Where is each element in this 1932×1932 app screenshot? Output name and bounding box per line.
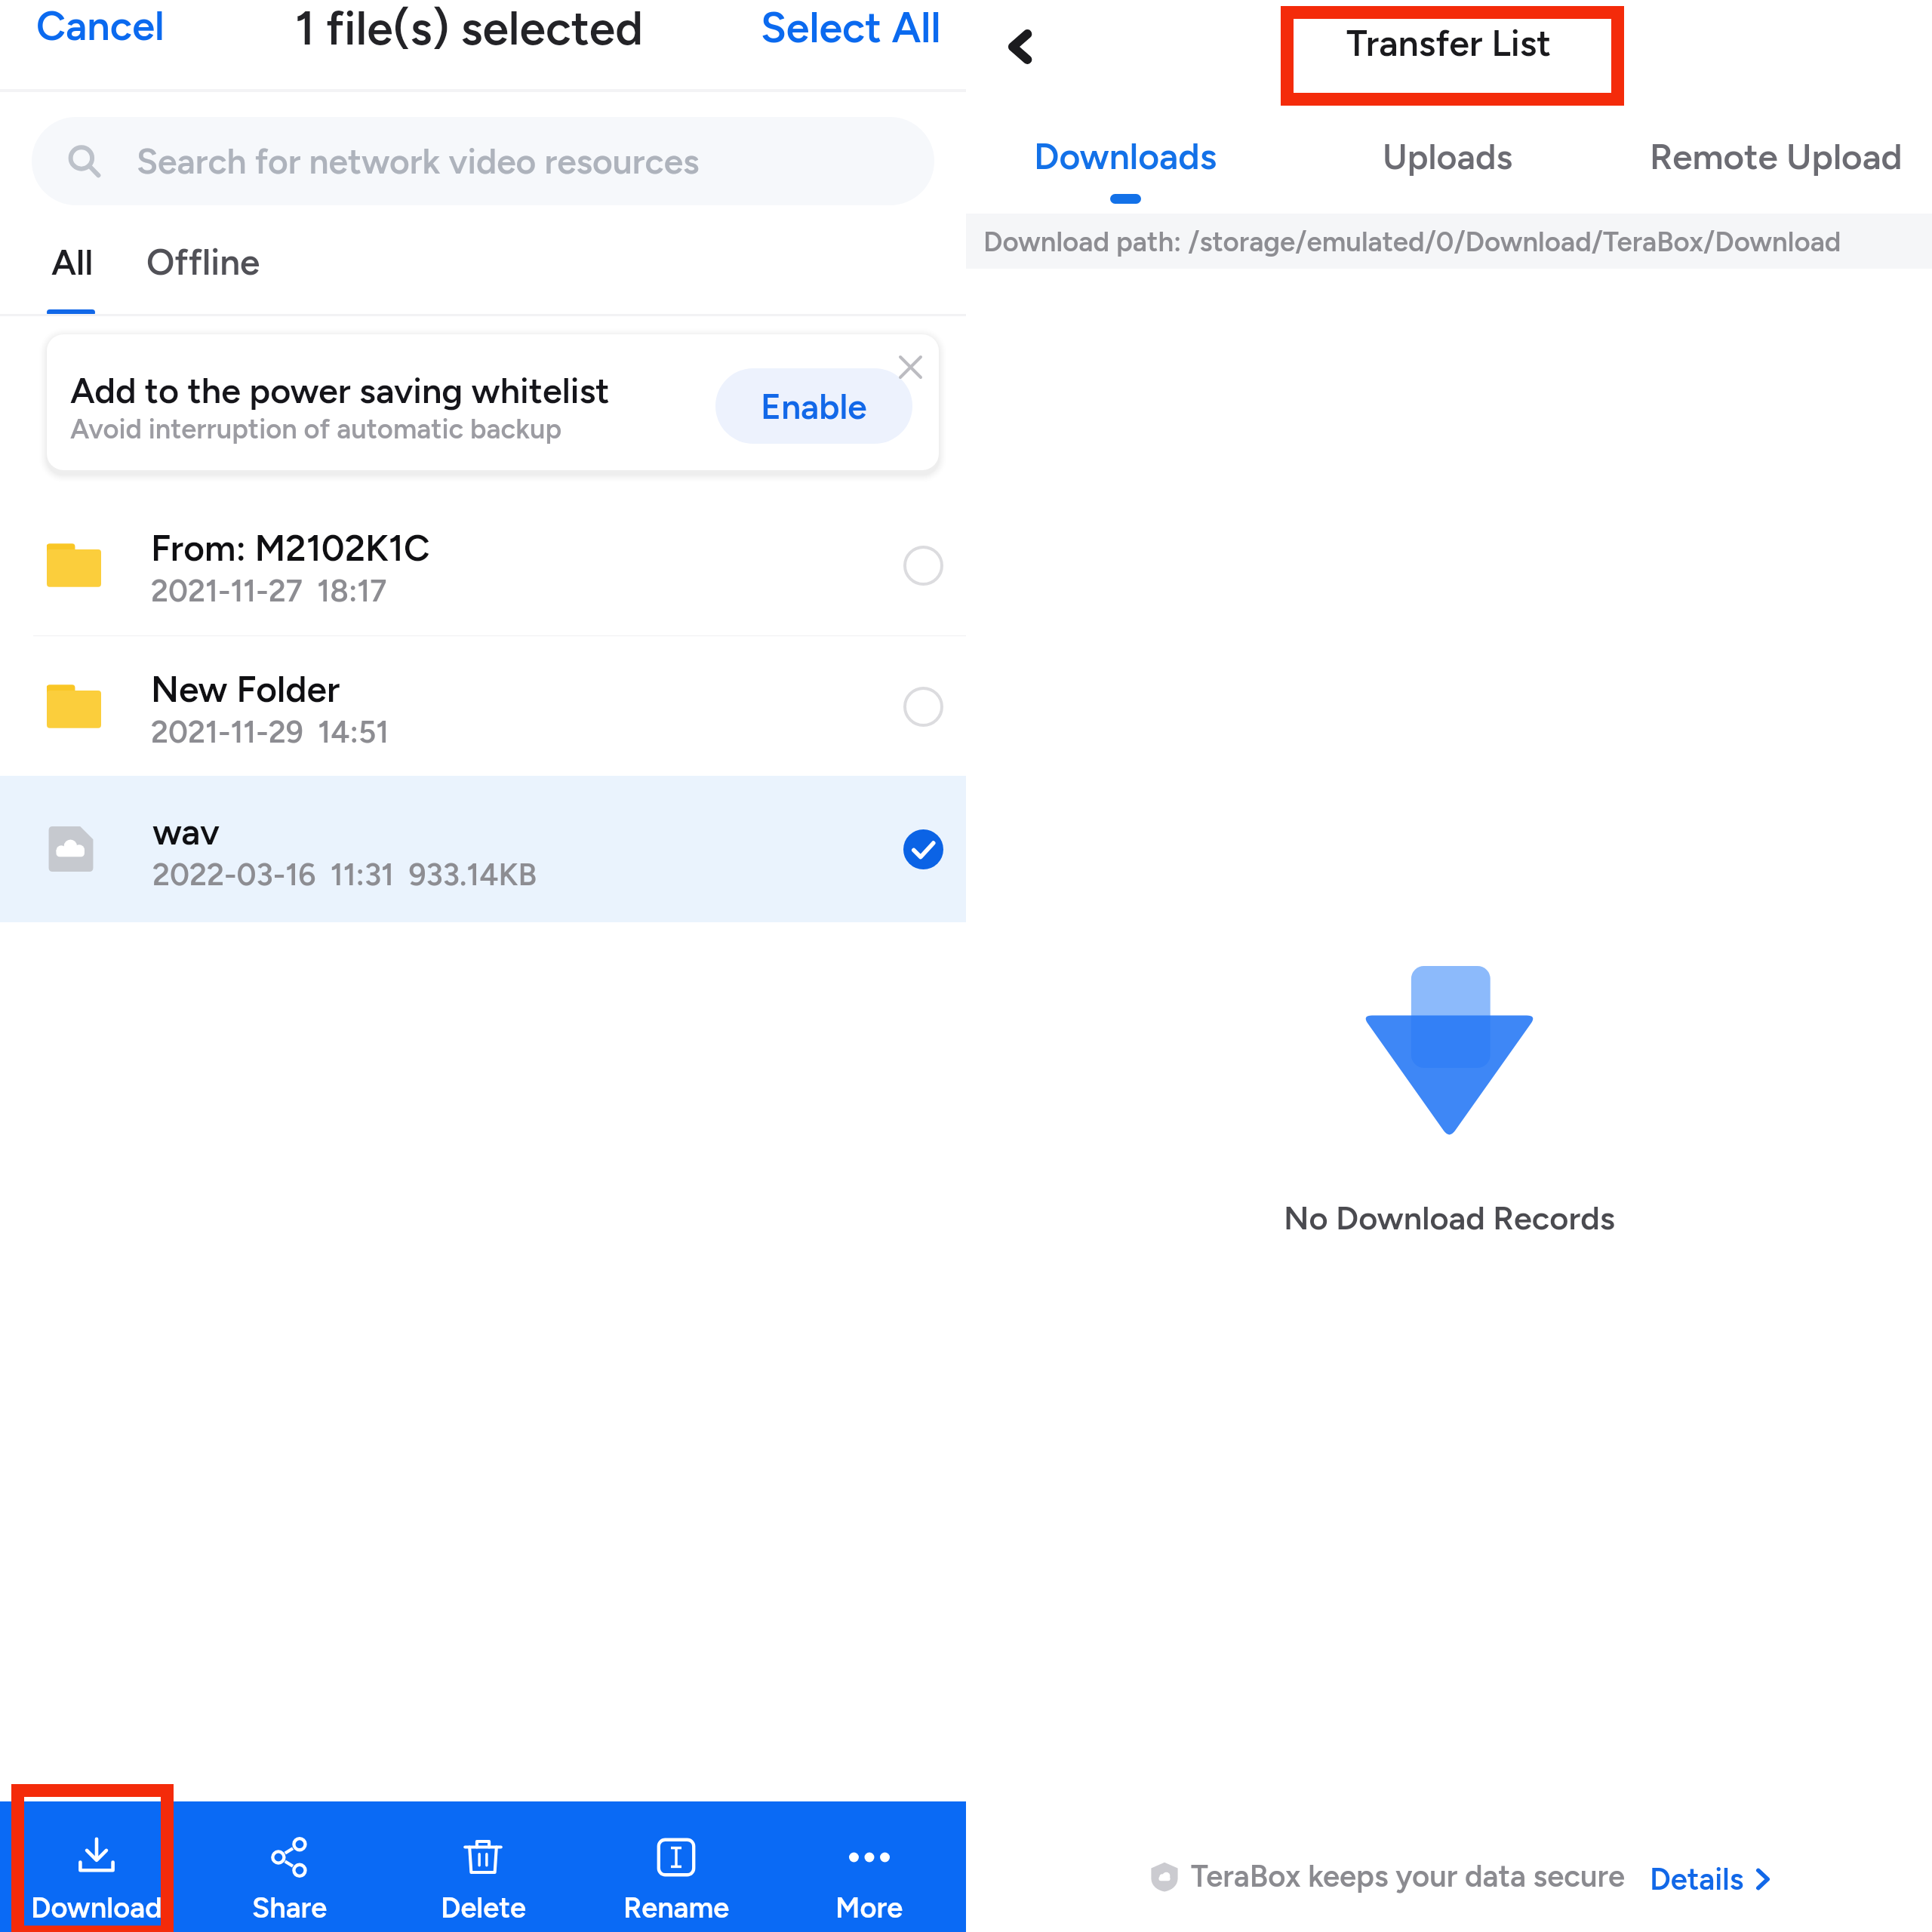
staticText: Select All xyxy=(761,2,941,53)
button[interactable]: Back xyxy=(990,17,1051,77)
button[interactable]: Search for network video resources xyxy=(32,117,934,205)
staticText: Transfer List xyxy=(1346,21,1552,65)
staticText: Downloads xyxy=(1034,134,1217,178)
staticText: No Download Records xyxy=(1284,1198,1615,1238)
staticText: Offline xyxy=(146,241,260,284)
staticText: Download xyxy=(31,1890,162,1925)
staticText: Avoid interruption of automatic backup xyxy=(70,413,562,446)
button[interactable]: Select All xyxy=(749,0,953,65)
staticText: TeraBox keeps your data secure xyxy=(1191,1858,1626,1894)
staticText: Details xyxy=(1650,1861,1744,1897)
button[interactable]: Details xyxy=(1642,1854,1780,1905)
staticText: Add to the power saving whitelist xyxy=(70,370,610,412)
button[interactable]: Select item xyxy=(896,822,950,876)
button[interactable]: Share xyxy=(193,1801,386,1932)
button[interactable]: Cancel xyxy=(24,0,177,63)
button[interactable]: Rename xyxy=(580,1801,773,1932)
staticText: New Folder xyxy=(151,667,340,710)
button[interactable]: All xyxy=(42,232,103,293)
button[interactable]: Uploads xyxy=(1374,127,1522,187)
staticText: Delete xyxy=(441,1890,526,1925)
staticText: Uploads xyxy=(1383,136,1513,178)
staticText: 1 file(s) selected xyxy=(295,0,644,57)
staticText: Share xyxy=(252,1890,328,1925)
button[interactable]: Select item xyxy=(896,679,950,734)
staticText: 2021-11-27 18:17 xyxy=(151,573,387,609)
staticText: Cancel xyxy=(36,2,165,51)
staticText: Search for network video resources xyxy=(137,140,700,182)
button[interactable]: Remote Upload xyxy=(1641,126,1912,187)
staticText: Rename xyxy=(623,1890,730,1925)
button[interactable]: Download xyxy=(0,1801,193,1932)
button[interactable]: 1 file(s) selected xyxy=(283,0,656,72)
button[interactable]: Offline xyxy=(137,232,269,293)
staticText: Enable xyxy=(761,386,867,427)
button[interactable]: More xyxy=(773,1801,966,1932)
button[interactable]: Downloads xyxy=(1016,125,1235,213)
button[interactable]: Enable xyxy=(715,368,912,444)
staticText: All xyxy=(51,241,94,284)
staticText: wav xyxy=(152,810,220,853)
staticText: From: M2102K1C xyxy=(151,526,430,569)
button[interactable]: New Folder xyxy=(0,636,966,776)
staticText: 2022-03-16 11:31 933.14KB xyxy=(152,857,537,893)
button[interactable]: Add to the power saving whitelist xyxy=(47,334,939,470)
button[interactable]: Select item xyxy=(896,538,950,592)
staticText: More xyxy=(835,1890,903,1925)
button[interactable]: Delete xyxy=(386,1801,580,1932)
staticText: Download path: /storage/emulated/0/Downl… xyxy=(983,225,1841,258)
button[interactable]: From: M2102K1C xyxy=(0,494,966,636)
staticText: Remote Upload xyxy=(1650,135,1903,178)
staticText: 2021-11-29 14:51 xyxy=(151,714,389,750)
button[interactable]: Dismiss xyxy=(891,347,930,386)
button[interactable]: wav xyxy=(0,776,966,922)
